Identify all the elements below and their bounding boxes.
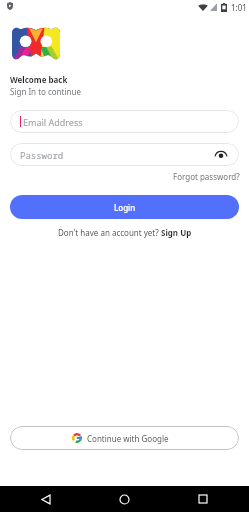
staticText: Welcome back	[10, 74, 68, 85]
button[interactable]: Recent apps	[198, 494, 208, 504]
staticText: Continue with Google	[87, 433, 169, 444]
staticText: 1:01	[231, 2, 247, 13]
staticText: Login	[114, 202, 136, 213]
staticText: Forgot password?	[173, 171, 240, 182]
button[interactable]: Sign Up	[161, 227, 192, 238]
button[interactable]: Back	[41, 494, 52, 505]
staticText: Password	[20, 149, 64, 161]
button[interactable]: Password	[10, 143, 239, 166]
button[interactable]: Continue with Google	[10, 426, 239, 450]
staticText: Email Address	[23, 116, 83, 128]
staticText: Sign In to continue	[10, 86, 81, 97]
button[interactable]: Home	[119, 494, 130, 505]
staticText: Sign Up	[161, 227, 192, 238]
button[interactable]: Show password	[214, 148, 228, 162]
button[interactable]: Login	[10, 195, 239, 219]
button[interactable]: Email Address	[10, 110, 239, 133]
staticText: Don't have an account yet?	[58, 227, 161, 238]
button[interactable]: Forgot password?	[173, 171, 240, 182]
